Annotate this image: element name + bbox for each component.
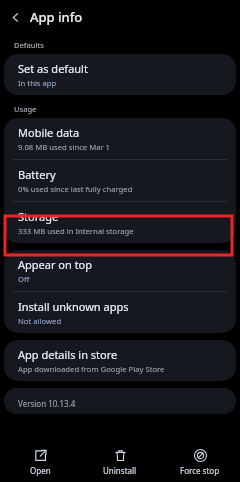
button[interactable]: Battery bbox=[4, 160, 236, 201]
button[interactable]: Back bbox=[0, 2, 30, 32]
staticText: Not allowed bbox=[18, 316, 62, 326]
staticText: Battery bbox=[18, 167, 56, 182]
staticText: In this app bbox=[18, 78, 57, 88]
button[interactable]: Open bbox=[0, 446, 80, 479]
staticText: Install unknown apps bbox=[18, 299, 129, 314]
button[interactable]: Uninstall bbox=[80, 446, 160, 479]
staticText: App downloaded from Google Play Store bbox=[18, 364, 165, 374]
staticText: 9.08 MB used since Mar 1 bbox=[18, 142, 111, 152]
button[interactable]: Storage bbox=[4, 202, 236, 243]
staticText: Version 10.13.4 bbox=[18, 398, 76, 409]
button[interactable]: Mobile data bbox=[4, 118, 236, 159]
staticText: 0% used since last fully charged bbox=[18, 184, 133, 194]
staticText: 333 MB used in Internal storage bbox=[18, 226, 134, 236]
staticText: Mobile data bbox=[18, 125, 80, 140]
staticText: Storage bbox=[18, 209, 59, 224]
staticText: Open bbox=[30, 465, 51, 476]
button[interactable]: Appear on top bbox=[4, 250, 236, 291]
staticText: App info bbox=[30, 8, 83, 26]
staticText: Off bbox=[18, 274, 30, 284]
button[interactable]: Force stop bbox=[160, 446, 240, 479]
staticText: Uninstall bbox=[103, 465, 137, 476]
staticText: App details in store bbox=[18, 347, 118, 362]
staticText: Force stop bbox=[180, 465, 220, 476]
staticText: Set as default bbox=[18, 61, 88, 76]
staticText: Appear on top bbox=[18, 257, 93, 272]
button[interactable]: Set as default bbox=[4, 54, 236, 95]
staticText: Usage bbox=[14, 104, 37, 114]
button[interactable]: App details in store bbox=[4, 340, 236, 381]
button[interactable]: Install unknown apps bbox=[4, 292, 236, 333]
staticText: Defaults bbox=[14, 40, 44, 50]
